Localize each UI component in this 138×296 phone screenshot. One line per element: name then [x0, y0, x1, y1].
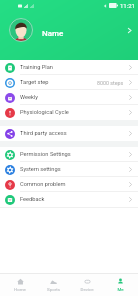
staticText: Common problem — [20, 181, 66, 188]
button[interactable]: Device — [71, 278, 103, 292]
button[interactable]: Third party access — [0, 126, 138, 141]
button[interactable]: Feedback — [0, 192, 138, 207]
staticText: Training Plan — [20, 64, 53, 71]
button[interactable]: System settings — [0, 162, 138, 177]
button[interactable]: Training Plan — [0, 60, 138, 75]
button[interactable]: Physiological Cycle — [0, 105, 138, 120]
staticText: Weekly — [20, 94, 38, 101]
staticText: Third party access — [20, 130, 67, 137]
button[interactable]: Target step — [0, 75, 138, 90]
staticText: Sports — [47, 287, 60, 292]
staticText: 8000 steps — [97, 80, 124, 86]
staticText: Target step — [20, 79, 49, 86]
staticText: Me — [117, 287, 124, 292]
staticText: Name — [42, 29, 64, 38]
button[interactable]: Me — [104, 278, 136, 292]
button[interactable]: Permission Settings — [0, 147, 138, 162]
button[interactable]: Name — [0, 17, 138, 43]
staticText: System settings — [20, 166, 61, 173]
staticText: Feedback — [20, 196, 45, 203]
button[interactable]: Sports — [37, 278, 69, 292]
staticText: Home — [14, 287, 26, 292]
button[interactable]: Common problem — [0, 177, 138, 192]
button[interactable]: Weekly — [0, 90, 138, 105]
button[interactable]: Home — [4, 278, 36, 292]
staticText: Permission Settings — [20, 151, 71, 158]
staticText: 11:21 — [120, 2, 135, 9]
staticText: Device — [80, 287, 94, 292]
staticText: Physiological Cycle — [20, 109, 69, 116]
